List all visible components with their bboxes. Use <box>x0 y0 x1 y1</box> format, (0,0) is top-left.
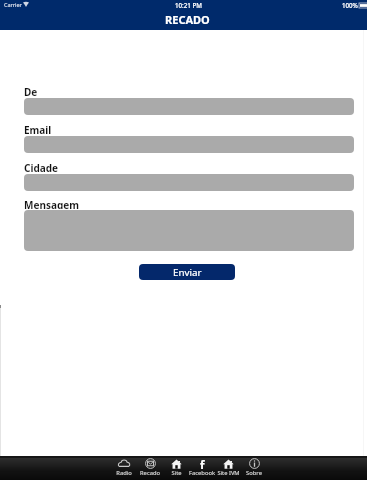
staticText: Mensagem <box>24 198 79 209</box>
staticText: Email <box>24 123 52 134</box>
button[interactable]: Site <box>163 458 189 477</box>
button[interactable]: Enviar <box>139 264 235 280</box>
staticText: Carrier <box>4 1 22 8</box>
button[interactable] <box>24 98 354 115</box>
staticText: Site IVM <box>217 469 240 477</box>
staticText: Site <box>171 469 182 477</box>
staticText: Enviar <box>173 266 202 279</box>
staticText: Recado <box>140 469 160 477</box>
staticText: Cidade <box>24 161 59 172</box>
button[interactable] <box>24 174 354 191</box>
button[interactable] <box>24 136 354 153</box>
staticText: 10:21 PM <box>175 1 202 9</box>
button[interactable]: Facebook <box>189 458 215 477</box>
button[interactable]: Site IVM <box>215 458 241 477</box>
staticText: Radio <box>116 469 132 477</box>
staticText: Facebook <box>189 469 215 477</box>
button[interactable]: Recado <box>137 458 163 477</box>
staticText: Sobre <box>246 469 262 477</box>
button[interactable]: Sobre <box>241 458 267 477</box>
button[interactable]: Radio <box>111 458 137 477</box>
staticText: 100% <box>342 1 358 9</box>
staticText: f <box>200 458 205 469</box>
staticText: De <box>24 85 38 96</box>
staticText: RECADO <box>165 12 210 27</box>
